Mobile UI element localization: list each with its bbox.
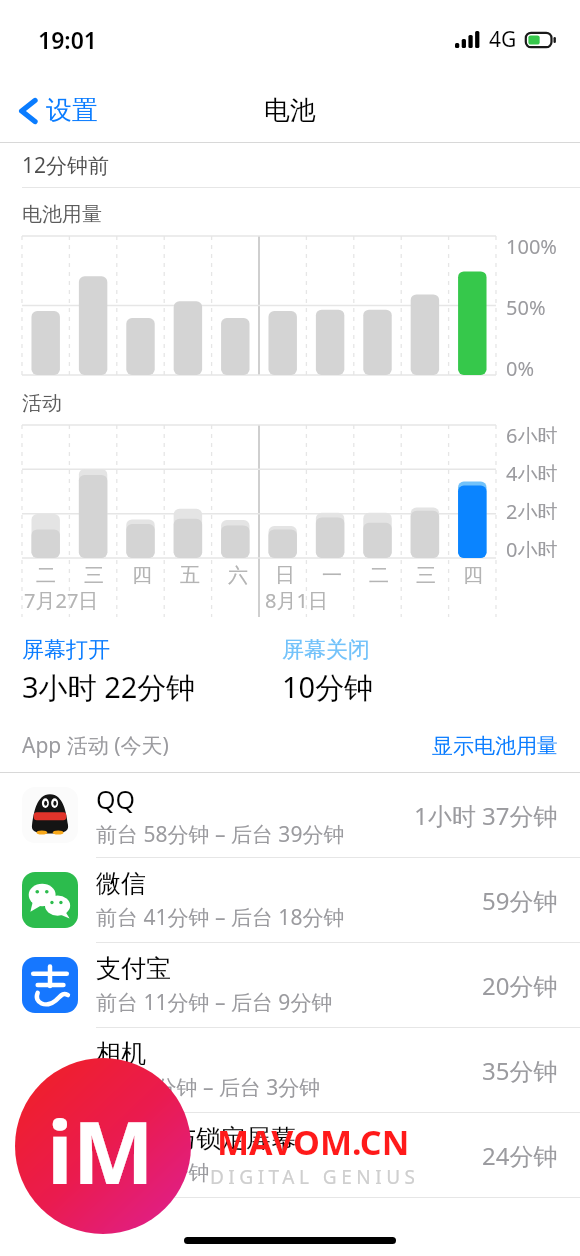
- staticText: 主屏幕与锁定屏幕: [96, 1123, 296, 1154]
- staticText: 前台 11分钟 – 后台 9分钟: [96, 988, 333, 1017]
- staticText: 五: [180, 563, 200, 588]
- staticText: iM: [47, 1092, 154, 1209]
- staticText: 四: [463, 563, 483, 588]
- staticText: 一: [322, 563, 342, 588]
- staticText: 三: [416, 563, 436, 588]
- other: Alipay app icon: [22, 957, 78, 1013]
- staticText: MAVOM.CN: [217, 1119, 410, 1165]
- staticText: 10分钟: [282, 667, 374, 707]
- other: WeChat app icon: [22, 872, 78, 928]
- staticText: 日: [275, 563, 295, 588]
- button[interactable]: WeChat app icon: [0, 858, 580, 943]
- staticText: 50%: [506, 294, 546, 318]
- other: QQ app icon: [22, 787, 78, 843]
- staticText: 屏幕关闭: [282, 636, 370, 664]
- staticText: App 活动 (今天): [22, 731, 169, 760]
- staticText: 7月27日: [24, 587, 99, 614]
- staticText: 0%: [506, 355, 535, 379]
- button[interactable]: 设置: [14, 86, 104, 135]
- button[interactable]: Home and lock screen icon: [0, 1113, 580, 1198]
- staticText: 20分钟: [482, 969, 558, 1002]
- staticText: 前台 58分钟 – 后台 39分钟: [96, 820, 345, 849]
- button[interactable]: QQ app icon: [0, 773, 580, 858]
- staticText: 四: [132, 563, 152, 588]
- button[interactable]: 相机: [0, 1028, 580, 1113]
- staticText: 六: [228, 563, 248, 588]
- staticText: 4小时: [506, 460, 558, 482]
- staticText: 活动: [22, 391, 62, 416]
- staticText: 三: [84, 563, 104, 588]
- staticText: 相机: [96, 1038, 146, 1069]
- staticText: 100%: [506, 233, 557, 257]
- other: Home and lock screen icon: [22, 1127, 78, 1183]
- staticText: 前台 5分钟 – 后台 3分钟: [96, 1073, 321, 1102]
- staticText: 支付宝: [96, 953, 171, 984]
- button[interactable]: Alipay app icon: [0, 943, 580, 1028]
- staticText: DIGITAL GENIUS: [210, 1164, 420, 1190]
- staticText: 前台 24分钟: [96, 1158, 210, 1187]
- staticText: 屏幕打开: [22, 636, 110, 664]
- staticText: 24分钟: [482, 1139, 558, 1172]
- staticText: 前台 41分钟 – 后台 18分钟: [96, 903, 345, 932]
- staticText: 电池: [264, 94, 316, 127]
- staticText: 0小时: [506, 536, 558, 558]
- staticText: 设置: [46, 94, 98, 127]
- staticText: 电池用量: [22, 202, 102, 227]
- staticText: 12分钟前: [22, 151, 110, 180]
- staticText: 59分钟: [482, 884, 558, 917]
- staticText: 6小时: [506, 422, 558, 444]
- staticText: 2小时: [506, 498, 558, 520]
- staticText: QQ: [96, 782, 136, 816]
- staticText: 二: [369, 563, 389, 588]
- staticText: 4G: [489, 25, 517, 54]
- staticText: 3小时 22分钟: [22, 667, 196, 707]
- staticText: 8月1日: [265, 587, 328, 614]
- staticText: 微信: [96, 868, 146, 899]
- staticText: 显示电池用量: [432, 733, 558, 759]
- button[interactable]: 显示电池用量: [432, 733, 558, 759]
- staticText: 19:01: [38, 24, 97, 55]
- staticText: 1小时 37分钟: [414, 799, 558, 832]
- staticText: 35分钟: [482, 1054, 558, 1087]
- staticText: 二: [36, 563, 56, 588]
